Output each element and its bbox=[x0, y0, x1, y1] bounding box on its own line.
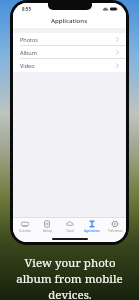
staticText: Album bbox=[20, 49, 37, 56]
staticText: 8:55 bbox=[22, 6, 31, 12]
staticText: Overview bbox=[19, 229, 31, 233]
button[interactable]: Preferences bbox=[104, 218, 126, 235]
staticText: Backup bbox=[43, 229, 52, 233]
staticText: Preferences bbox=[108, 229, 123, 233]
staticText: Applications bbox=[84, 229, 100, 233]
button[interactable]: Overview bbox=[14, 218, 36, 235]
staticText: Video bbox=[20, 62, 35, 69]
staticText: devices. bbox=[48, 287, 92, 300]
staticText: Photos bbox=[20, 36, 39, 43]
button[interactable]: Cloud bbox=[59, 218, 81, 235]
button[interactable]: Photos bbox=[13, 33, 126, 46]
staticText: View your photo bbox=[24, 255, 116, 271]
button[interactable]: Applications bbox=[81, 218, 103, 235]
button[interactable]: Video bbox=[13, 59, 126, 72]
button[interactable]: Backup bbox=[36, 218, 58, 235]
staticText: Applications bbox=[51, 17, 88, 25]
button[interactable]: Album bbox=[13, 46, 126, 59]
staticText: Cloud bbox=[66, 229, 74, 233]
staticText: album from mobile bbox=[16, 271, 123, 287]
